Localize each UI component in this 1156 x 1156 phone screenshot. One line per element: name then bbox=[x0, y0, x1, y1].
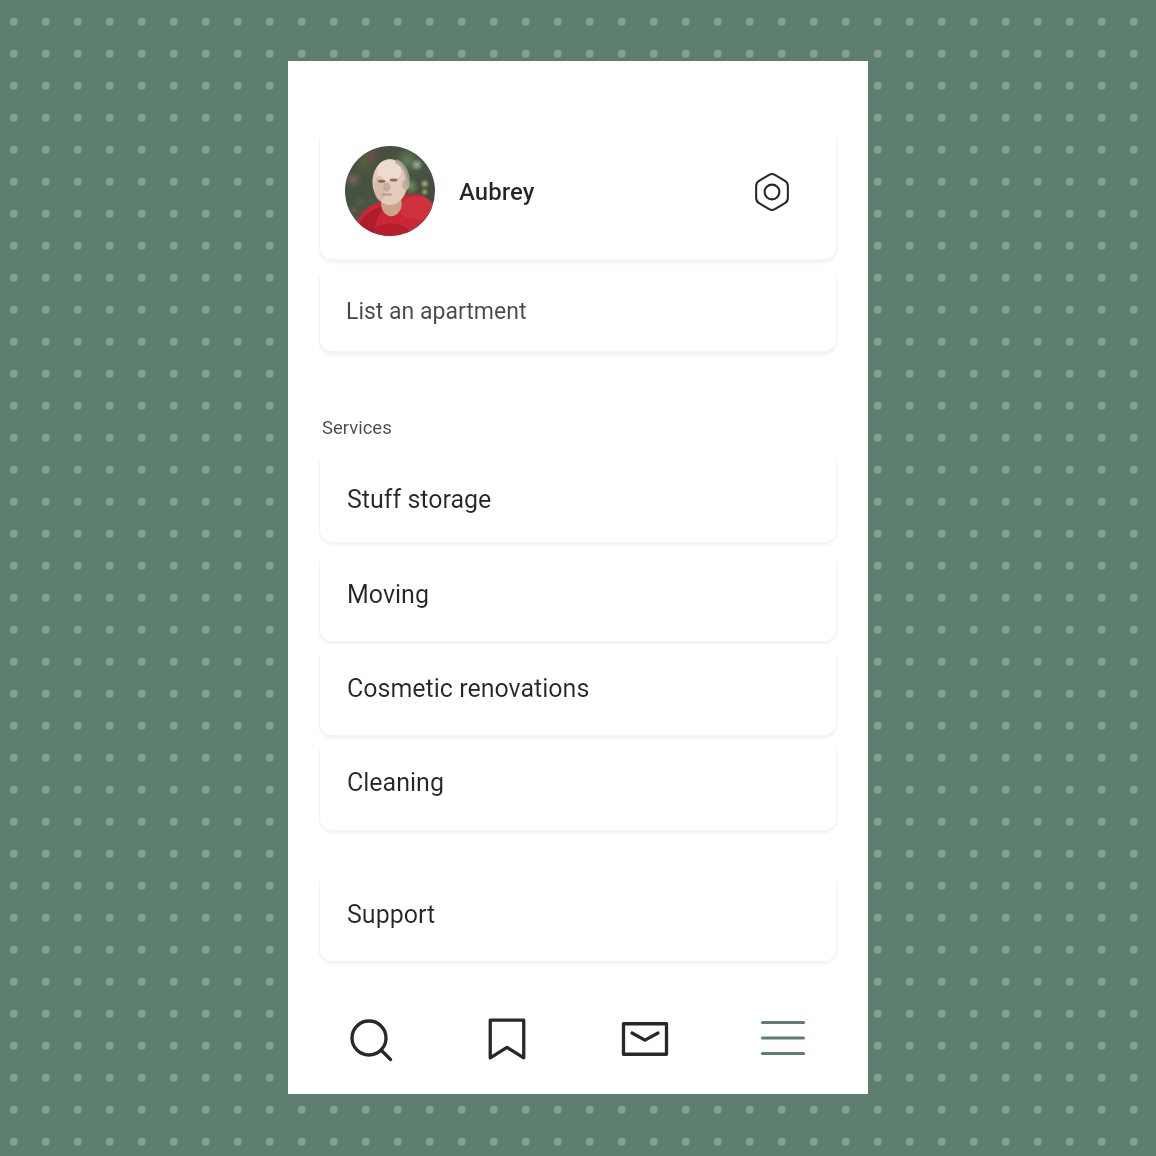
staticText: Stuff storage bbox=[347, 485, 492, 514]
button[interactable]: Cosmetic renovations bbox=[320, 644, 836, 735]
button[interactable]: Messages bbox=[560, 993, 686, 1089]
staticText: Cleaning bbox=[347, 768, 444, 797]
staticText: Aubrey bbox=[459, 178, 535, 206]
button[interactable]: Moving bbox=[320, 550, 836, 641]
button[interactable]: Aubrey bbox=[320, 128, 836, 259]
staticText: Moving bbox=[347, 580, 429, 609]
staticText: List an apartment bbox=[346, 298, 527, 325]
button[interactable]: Settings bbox=[748, 168, 796, 216]
button[interactable]: Menu bbox=[686, 993, 812, 1089]
button[interactable]: Stuff storage bbox=[320, 451, 836, 542]
staticText: Services bbox=[322, 417, 392, 439]
button[interactable]: Search bbox=[308, 993, 434, 1089]
button[interactable]: Cleaning bbox=[320, 739, 836, 830]
button[interactable]: List an apartment bbox=[320, 266, 836, 351]
staticText: Cosmetic renovations bbox=[347, 674, 590, 703]
staticText: Support bbox=[347, 900, 436, 929]
button[interactable]: Bookmarks bbox=[434, 993, 560, 1089]
button[interactable]: Support bbox=[320, 870, 836, 961]
